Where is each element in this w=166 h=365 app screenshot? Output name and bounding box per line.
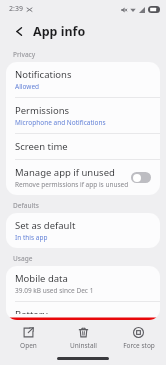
staticText: Force stop: [123, 341, 155, 350]
staticText: 2:39: [9, 4, 23, 14]
button[interactable]: Open: [0, 325, 56, 352]
staticText: Set as default: [15, 219, 76, 232]
staticText: Defaults: [13, 201, 40, 210]
staticText: Remove permissions if app is unused: [15, 180, 129, 189]
staticText: App info: [33, 23, 86, 40]
button[interactable]: Screen time: [6, 134, 160, 159]
staticText: Privacy: [13, 50, 36, 59]
staticText: Allowed: [15, 82, 40, 91]
staticText: In this app: [15, 233, 48, 242]
button[interactable]: Notifications: [6, 62, 160, 97]
button[interactable]: Set as default: [6, 213, 160, 248]
staticText: Screen time: [15, 140, 68, 153]
staticText: Manage app if unused: [15, 166, 115, 179]
button[interactable]: Manage app if unused: [6, 160, 160, 195]
staticText: 39.09 kB used since Dec 1: [15, 286, 94, 295]
button[interactable]: Battery: [6, 302, 160, 320]
button[interactable]: Manage app if unused toggle: [131, 172, 151, 183]
staticText: Battery: [15, 308, 48, 314]
staticText: Mobile data: [15, 272, 68, 285]
button[interactable]: Mobile data: [6, 266, 160, 301]
button[interactable]: Back: [10, 22, 28, 40]
staticText: Open: [20, 341, 37, 350]
button[interactable]: Force stop: [111, 325, 166, 352]
button[interactable]: Permissions: [6, 98, 160, 133]
button[interactable]: Uninstall: [56, 325, 111, 352]
staticText: Notifications: [15, 68, 72, 81]
staticText: Permissions: [15, 104, 70, 117]
staticText: Uninstall: [70, 341, 97, 350]
staticText: Microphone and Notifications: [15, 118, 106, 127]
staticText: Usage: [13, 254, 33, 263]
